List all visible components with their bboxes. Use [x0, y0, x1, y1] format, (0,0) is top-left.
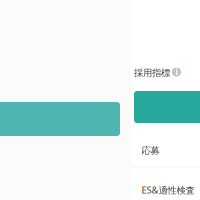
staticText: i: [175, 67, 177, 77]
button[interactable]: About recruiting metrics: [169, 65, 183, 79]
button[interactable]: ES&適性検査: [131, 173, 200, 200]
staticText: ES&適性検査: [141, 184, 194, 196]
staticText: 採用指標: [134, 67, 170, 79]
button[interactable]: Previous recruiting metric chart: [0, 102, 120, 136]
button[interactable]: Recruiting metric chart: [134, 91, 200, 123]
staticText: 応募: [141, 145, 159, 156]
button[interactable]: 応募: [131, 134, 200, 168]
